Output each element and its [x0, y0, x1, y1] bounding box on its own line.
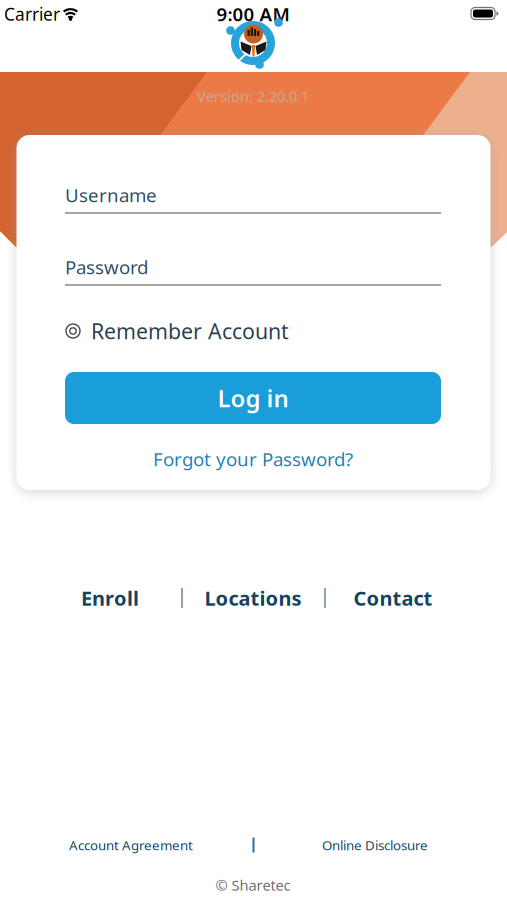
- button[interactable]: Locations: [204, 585, 301, 611]
- button[interactable]: Log in: [65, 372, 441, 424]
- staticText: Locations: [204, 585, 301, 611]
- staticText: Remember Account: [91, 317, 289, 345]
- staticText: Enroll: [81, 585, 139, 611]
- button[interactable]: Password: [65, 246, 441, 290]
- staticText: Password: [65, 255, 148, 279]
- staticText: Online Disclosure: [322, 836, 428, 854]
- staticText: Log in: [217, 382, 288, 414]
- staticText: Version: 2.20.0.1: [197, 86, 309, 106]
- staticText: Forgot your Password?: [153, 447, 353, 471]
- button[interactable]: Remember Account: [65, 317, 441, 345]
- button[interactable]: Enroll: [81, 585, 139, 611]
- button[interactable]: Forgot your Password?: [153, 447, 353, 471]
- staticText: Username: [65, 183, 157, 207]
- staticText: Contact: [353, 585, 432, 611]
- staticText: © Sharetec: [215, 875, 290, 895]
- button[interactable]: Contact: [353, 585, 432, 611]
- button[interactable]: Online Disclosure: [322, 836, 428, 854]
- button[interactable]: Username: [65, 174, 441, 218]
- button[interactable]: Account Agreement: [69, 836, 193, 854]
- staticText: Carrier: [4, 2, 60, 25]
- staticText: Account Agreement: [69, 836, 193, 854]
- staticText: 9:00 AM: [216, 2, 289, 26]
